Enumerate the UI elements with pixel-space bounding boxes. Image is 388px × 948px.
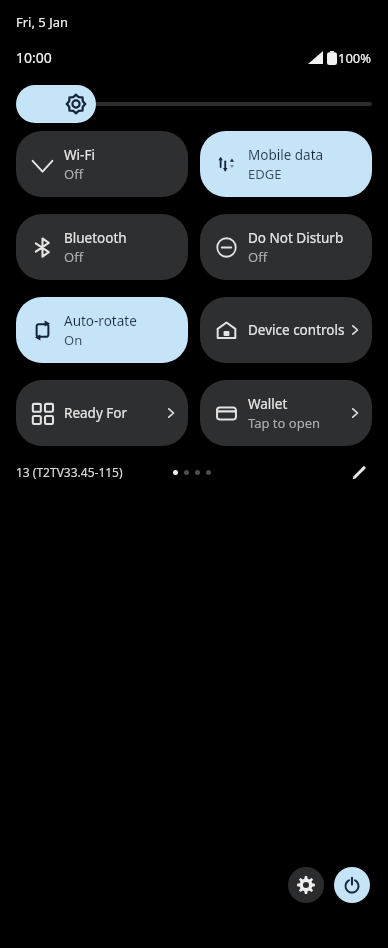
button[interactable]: Ready For [16,380,188,446]
staticText: Off [64,165,84,183]
staticText: 10:00 [16,48,52,67]
button[interactable]: Settings [288,867,324,903]
button[interactable]: Wallet [200,380,372,446]
staticText: EDGE [248,165,282,183]
staticText: Fri, 5 Jan [16,13,69,31]
staticText: Ready For [64,404,128,422]
button[interactable]: Do Not Disturb [200,214,372,280]
staticText: Off [248,248,268,266]
staticText: 100% [338,49,372,67]
button[interactable]: Auto-rotate [16,297,188,363]
button[interactable]: Brightness [16,85,372,123]
staticText: Wi-Fi [64,146,95,164]
button[interactable]: Bluetooth [16,214,188,280]
button[interactable]: Edit tiles [346,459,372,485]
staticText: Tap to open [248,414,321,432]
staticText: Mobile data [248,146,324,164]
staticText: Bluetooth [64,229,127,247]
staticText: Wallet [248,395,288,413]
button[interactable]: Power [334,867,370,903]
button[interactable]: Device controls [200,297,372,363]
button[interactable]: Mobile data [200,131,372,197]
staticText: Auto-rotate [64,312,137,330]
staticText: 13 (T2TV33.45-115) [16,464,123,480]
button[interactable]: Wi-Fi [16,131,188,197]
staticText: Do Not Disturb [248,229,344,247]
staticText: Device controls [248,321,345,339]
staticText: Off [64,248,84,266]
staticText: On [64,331,83,349]
